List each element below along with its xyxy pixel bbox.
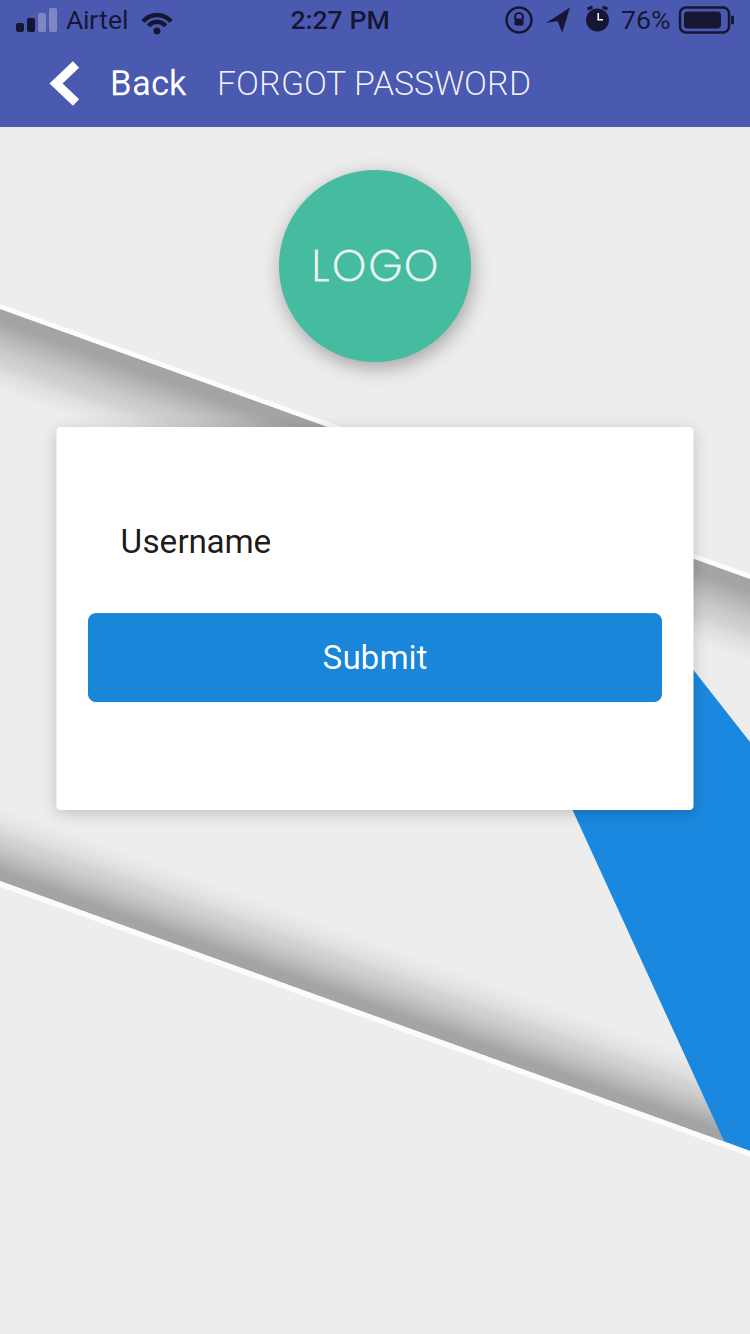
staticText: Username: [120, 522, 271, 561]
staticText: Submit: [322, 638, 427, 677]
staticText: Airtel: [66, 4, 128, 36]
staticText: FORGOT PASSWORD: [217, 64, 531, 103]
button[interactable]: Submit: [88, 613, 662, 702]
staticText: Back: [110, 63, 187, 104]
staticText: 76%: [621, 4, 671, 36]
staticText: LOGO: [311, 235, 439, 297]
staticText: 2:27 PM: [290, 4, 389, 36]
button[interactable]: Back: [0, 49, 199, 118]
